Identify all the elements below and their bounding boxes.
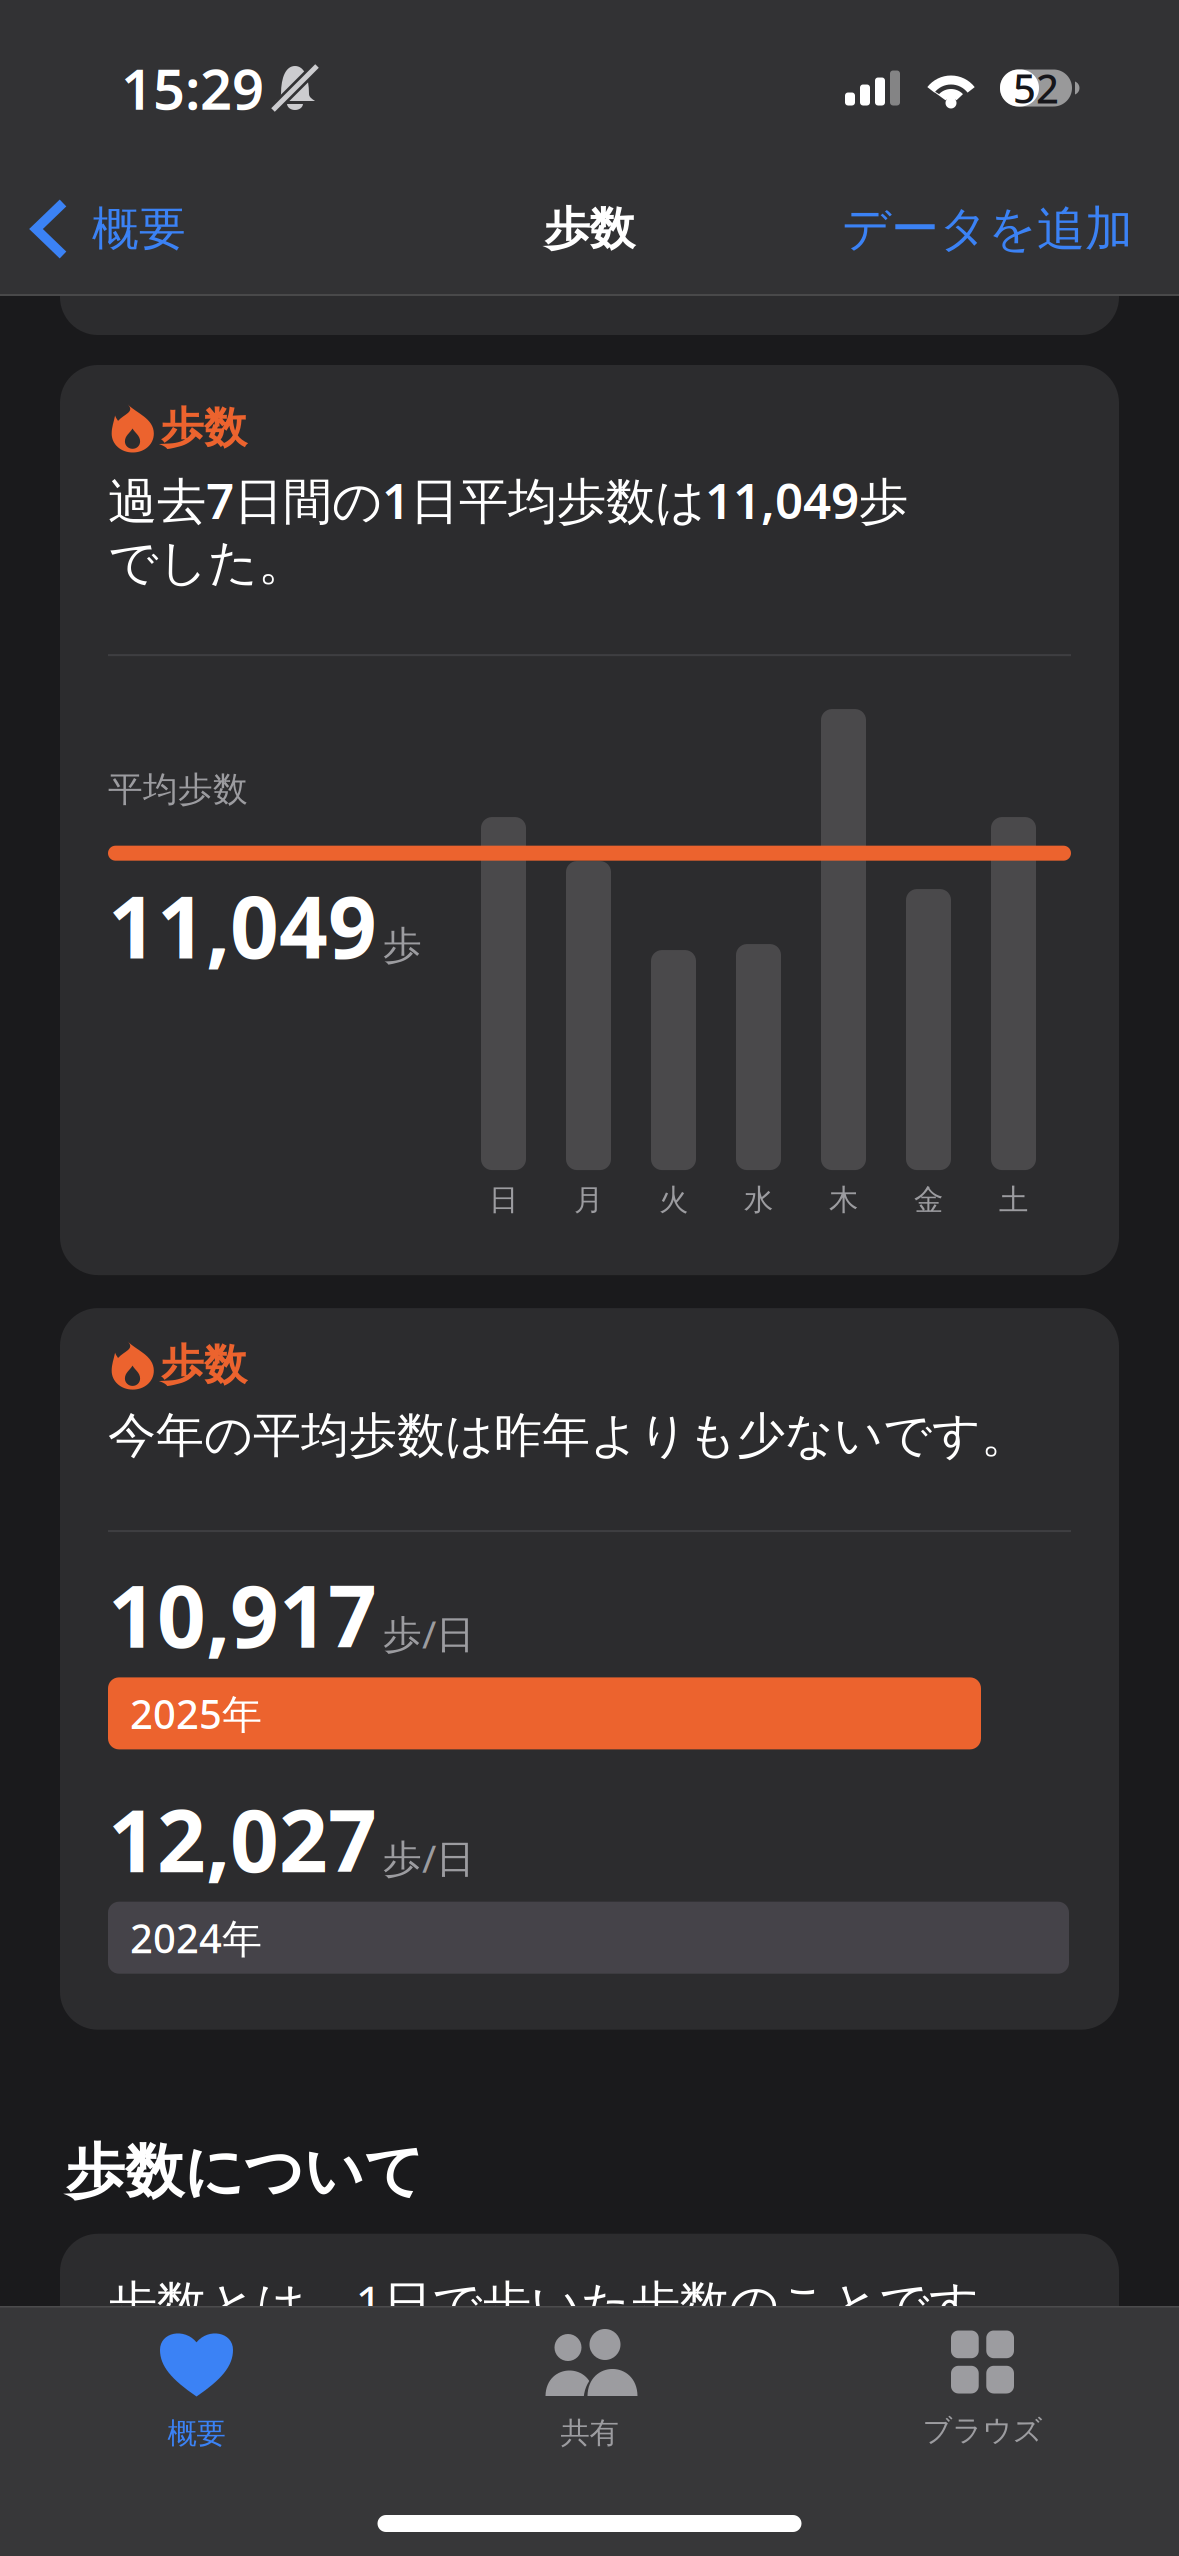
staticText: 月 — [574, 1182, 603, 1218]
button[interactable]: データを追加 — [822, 179, 1179, 278]
staticText: 水 — [744, 1182, 773, 1218]
button[interactable]: 共有 — [393, 2308, 786, 2455]
staticText: 10,917 — [108, 1558, 377, 1671]
staticText: 2024年 — [130, 1911, 262, 1964]
staticText: 過去7日間の1日平均歩数は11,049歩 でした。 — [108, 467, 908, 593]
staticText: 土 — [999, 1182, 1028, 1218]
button[interactable]: 概要 — [0, 178, 206, 280]
button[interactable]: 概要 — [0, 2307, 393, 2455]
staticText: 歩数とは、1日で歩いた歩数のことです。 — [108, 2270, 1028, 2335]
staticText: 歩数 — [544, 201, 634, 257]
staticText: ブラウズ — [922, 2412, 1042, 2448]
staticText: 概要 — [167, 2415, 225, 2451]
staticText: 52 — [1013, 61, 1059, 114]
staticText: 歩数 — [161, 1339, 247, 1391]
staticText: データを追加 — [842, 199, 1133, 258]
staticText: 共有 — [560, 2415, 618, 2451]
staticText: 火 — [659, 1182, 688, 1218]
staticText: 概要 — [92, 200, 186, 258]
staticText: 11,049 — [108, 869, 377, 982]
staticText: 金 — [914, 1182, 943, 1218]
staticText: 歩/日 — [383, 1832, 475, 1883]
staticText: 歩数 — [161, 402, 247, 454]
staticText: 15:29 — [121, 51, 264, 125]
button[interactable]: ブラウズ — [786, 2310, 1179, 2452]
staticText: 日 — [489, 1182, 518, 1218]
staticText: 歩 — [383, 922, 422, 969]
staticText: 歩数について — [66, 2136, 424, 2208]
staticText: 今年の平均歩数は昨年よりも少ないです。 — [108, 1406, 1029, 1465]
staticText: 歩/日 — [383, 1608, 475, 1659]
staticText: 平均歩数 — [108, 768, 248, 811]
staticText: 木 — [829, 1182, 858, 1218]
staticText: 12,027 — [108, 1782, 377, 1896]
staticText: 2025年 — [130, 1687, 262, 1740]
